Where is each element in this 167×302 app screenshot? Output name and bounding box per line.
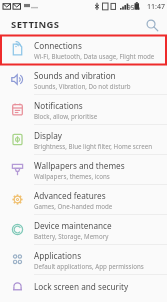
staticText: Games, One-handed mode <box>34 202 113 210</box>
button[interactable]: Applications <box>0 245 167 274</box>
button[interactable]: Search <box>143 16 161 34</box>
button[interactable]: Wallpapers and themes <box>0 155 167 184</box>
staticText: Connections <box>34 40 82 51</box>
button[interactable]: Device maintenance <box>0 215 167 244</box>
button[interactable]: Advanced features <box>0 185 167 214</box>
staticText: Device maintenance <box>34 220 112 231</box>
staticText: Battery, Storage, Memory <box>34 232 109 240</box>
staticText: 11:47 <box>147 2 165 12</box>
staticText: Wallpapers, themes, icons <box>34 172 110 180</box>
staticText: Notifications <box>34 100 83 111</box>
button[interactable]: Notifications <box>0 95 167 124</box>
staticText: Sounds, Vibration, Do not disturb <box>34 82 131 90</box>
staticText: Lock screen and security <box>34 281 129 292</box>
button[interactable]: Display <box>0 125 167 154</box>
staticText: Wallpapers and themes <box>34 160 125 171</box>
staticText: 95% <box>127 3 140 12</box>
button[interactable]: Connections <box>0 35 167 64</box>
button[interactable]: Lock screen and security <box>0 275 167 297</box>
staticText: Wi-Fi, Bluetooth, Data usage, Flight mod… <box>34 52 155 60</box>
staticText: Display <box>34 130 62 141</box>
staticText: Applications <box>34 250 82 261</box>
staticText: Brightness, Blue light filter, Home scre… <box>34 142 153 150</box>
staticText: Advanced features <box>34 190 106 201</box>
staticText: Block, allow, prioritise <box>34 112 98 120</box>
button[interactable]: Sounds and vibration <box>0 65 167 94</box>
staticText: SETTINGS <box>11 18 60 31</box>
staticText: Sounds and vibration <box>34 70 116 81</box>
staticText: Default applications, App permissions <box>34 262 144 270</box>
